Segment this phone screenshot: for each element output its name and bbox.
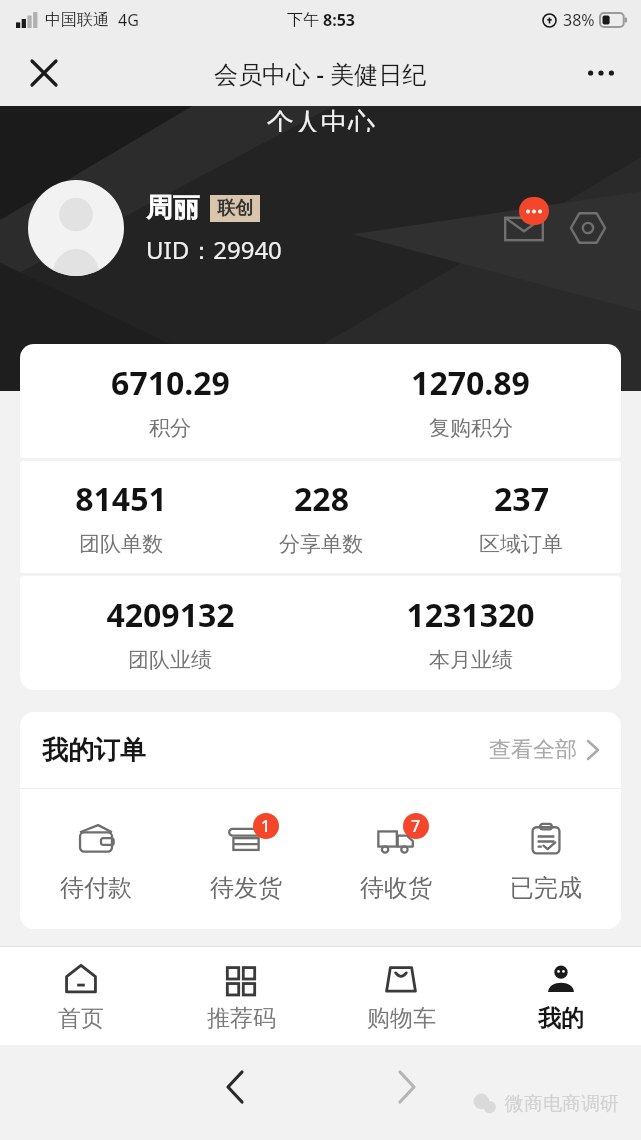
- button[interactable]: 待付款: [20, 815, 171, 903]
- staticText: 下午: [287, 10, 319, 30]
- button[interactable]: 4209132: [20, 593, 320, 673]
- button[interactable]: 81451: [20, 477, 221, 557]
- staticText: 复购积分: [429, 415, 513, 441]
- button[interactable]: Avatar: [28, 180, 124, 276]
- button[interactable]: Settings: [563, 203, 613, 253]
- button[interactable]: 推荐码: [161, 947, 321, 1045]
- button[interactable]: 228: [221, 477, 421, 557]
- button[interactable]: Forward: [379, 1059, 435, 1115]
- button[interactable]: 6710.29: [20, 361, 320, 441]
- staticText: 个人中心: [267, 106, 375, 132]
- staticText: 中国联通: [45, 10, 109, 30]
- staticText: 分享单数: [279, 531, 363, 557]
- button[interactable]: 已完成: [471, 815, 621, 903]
- button[interactable]: 购物车: [321, 947, 481, 1045]
- button[interactable]: 1231320: [320, 593, 621, 673]
- staticText: 228: [294, 477, 349, 521]
- staticText: 1270.89: [411, 361, 530, 405]
- staticText: 待发货: [210, 873, 282, 903]
- staticText: 1: [261, 815, 271, 837]
- staticText: 查看全部: [489, 736, 577, 764]
- staticText: 我的订单: [42, 734, 146, 767]
- staticText: 团队单数: [79, 531, 163, 557]
- staticText: 积分: [149, 415, 191, 441]
- staticText: 4209132: [106, 593, 235, 637]
- staticText: 周丽: [146, 191, 200, 225]
- staticText: 7: [411, 815, 421, 837]
- staticText: 38%: [563, 9, 595, 31]
- button[interactable]: 我的订单: [20, 712, 621, 788]
- staticText: 8:53: [323, 9, 355, 31]
- staticText: 81451: [75, 477, 167, 521]
- staticText: 团队业绩: [128, 647, 212, 673]
- button[interactable]: 1: [171, 815, 321, 903]
- staticText: 首页: [58, 1004, 104, 1033]
- button[interactable]: 我的: [481, 947, 641, 1045]
- button[interactable]: Close: [22, 51, 66, 95]
- staticText: 我的: [538, 1004, 584, 1033]
- button[interactable]: 1270.89: [320, 361, 621, 441]
- staticText: 购物车: [367, 1004, 436, 1033]
- staticText: 待付款: [60, 873, 132, 903]
- button[interactable]: Messages: [497, 201, 551, 255]
- staticText: 已完成: [510, 873, 582, 903]
- staticText: 1231320: [406, 593, 535, 637]
- staticText: 区域订单: [479, 531, 563, 557]
- staticText: 联创: [217, 197, 253, 220]
- staticText: 本月业绩: [429, 647, 513, 673]
- button[interactable]: 首页: [0, 947, 161, 1045]
- staticText: 微商电商调研: [505, 1092, 619, 1116]
- staticText: 237: [494, 477, 549, 521]
- button[interactable]: More options: [579, 51, 623, 95]
- button[interactable]: 7: [321, 815, 471, 903]
- staticText: 会员中心 - 美健日纪: [214, 57, 427, 90]
- button[interactable]: 237: [421, 477, 621, 557]
- button[interactable]: Back: [207, 1059, 263, 1115]
- staticText: UID：29940: [146, 233, 282, 266]
- staticText: 待收货: [360, 873, 432, 903]
- staticText: 推荐码: [207, 1004, 276, 1033]
- staticText: 6710.29: [111, 361, 230, 405]
- staticText: 4G: [118, 9, 139, 31]
